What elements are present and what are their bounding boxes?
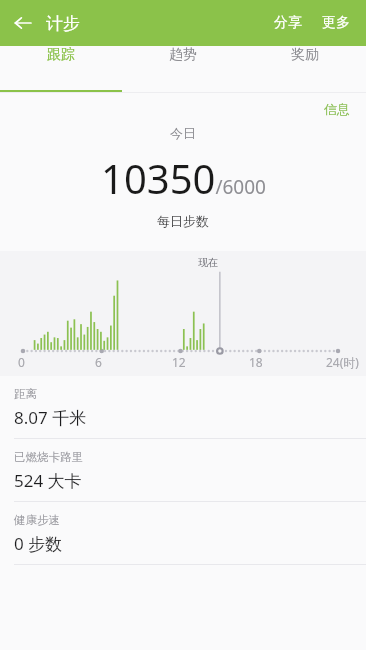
staticText: 0 步数 <box>14 532 63 555</box>
button[interactable]: 健康步速 <box>0 502 366 564</box>
staticText: 24(时) <box>326 354 359 370</box>
button[interactable]: 奖励 <box>244 46 366 64</box>
staticText: 信息 <box>324 101 350 117</box>
staticText: 更多 <box>322 14 350 32</box>
button[interactable]: 趋势 <box>122 46 244 64</box>
button[interactable]: 信息 <box>308 93 366 125</box>
staticText: 计步 <box>46 13 80 34</box>
staticText: 奖励 <box>291 46 319 64</box>
staticText: 每日步数 <box>157 213 209 229</box>
button[interactable]: Back <box>0 0 46 46</box>
staticText: 12 <box>172 354 186 370</box>
staticText: 跟踪 <box>47 46 75 64</box>
staticText: 分享 <box>274 14 302 32</box>
staticText: 距离 <box>14 387 37 401</box>
staticText: 现在 <box>198 256 218 269</box>
staticText: 趋势 <box>169 46 197 64</box>
staticText: 6 <box>95 354 102 370</box>
staticText: 已燃烧卡路里 <box>14 450 83 464</box>
button[interactable]: 距离 <box>0 376 366 438</box>
staticText: 524 大卡 <box>14 469 82 492</box>
button[interactable]: 已燃烧卡路里 <box>0 439 366 501</box>
staticText: 今日 <box>170 125 196 141</box>
button[interactable]: 跟踪 <box>0 46 122 64</box>
staticText: 0 <box>18 354 25 370</box>
staticText: 健康步速 <box>14 513 60 527</box>
staticText: 18 <box>249 354 263 370</box>
button[interactable]: 更多 <box>312 2 366 44</box>
staticText: 10350/6000 <box>101 151 266 205</box>
staticText: 8.07 千米 <box>14 406 87 429</box>
button[interactable]: 分享 <box>264 2 312 44</box>
